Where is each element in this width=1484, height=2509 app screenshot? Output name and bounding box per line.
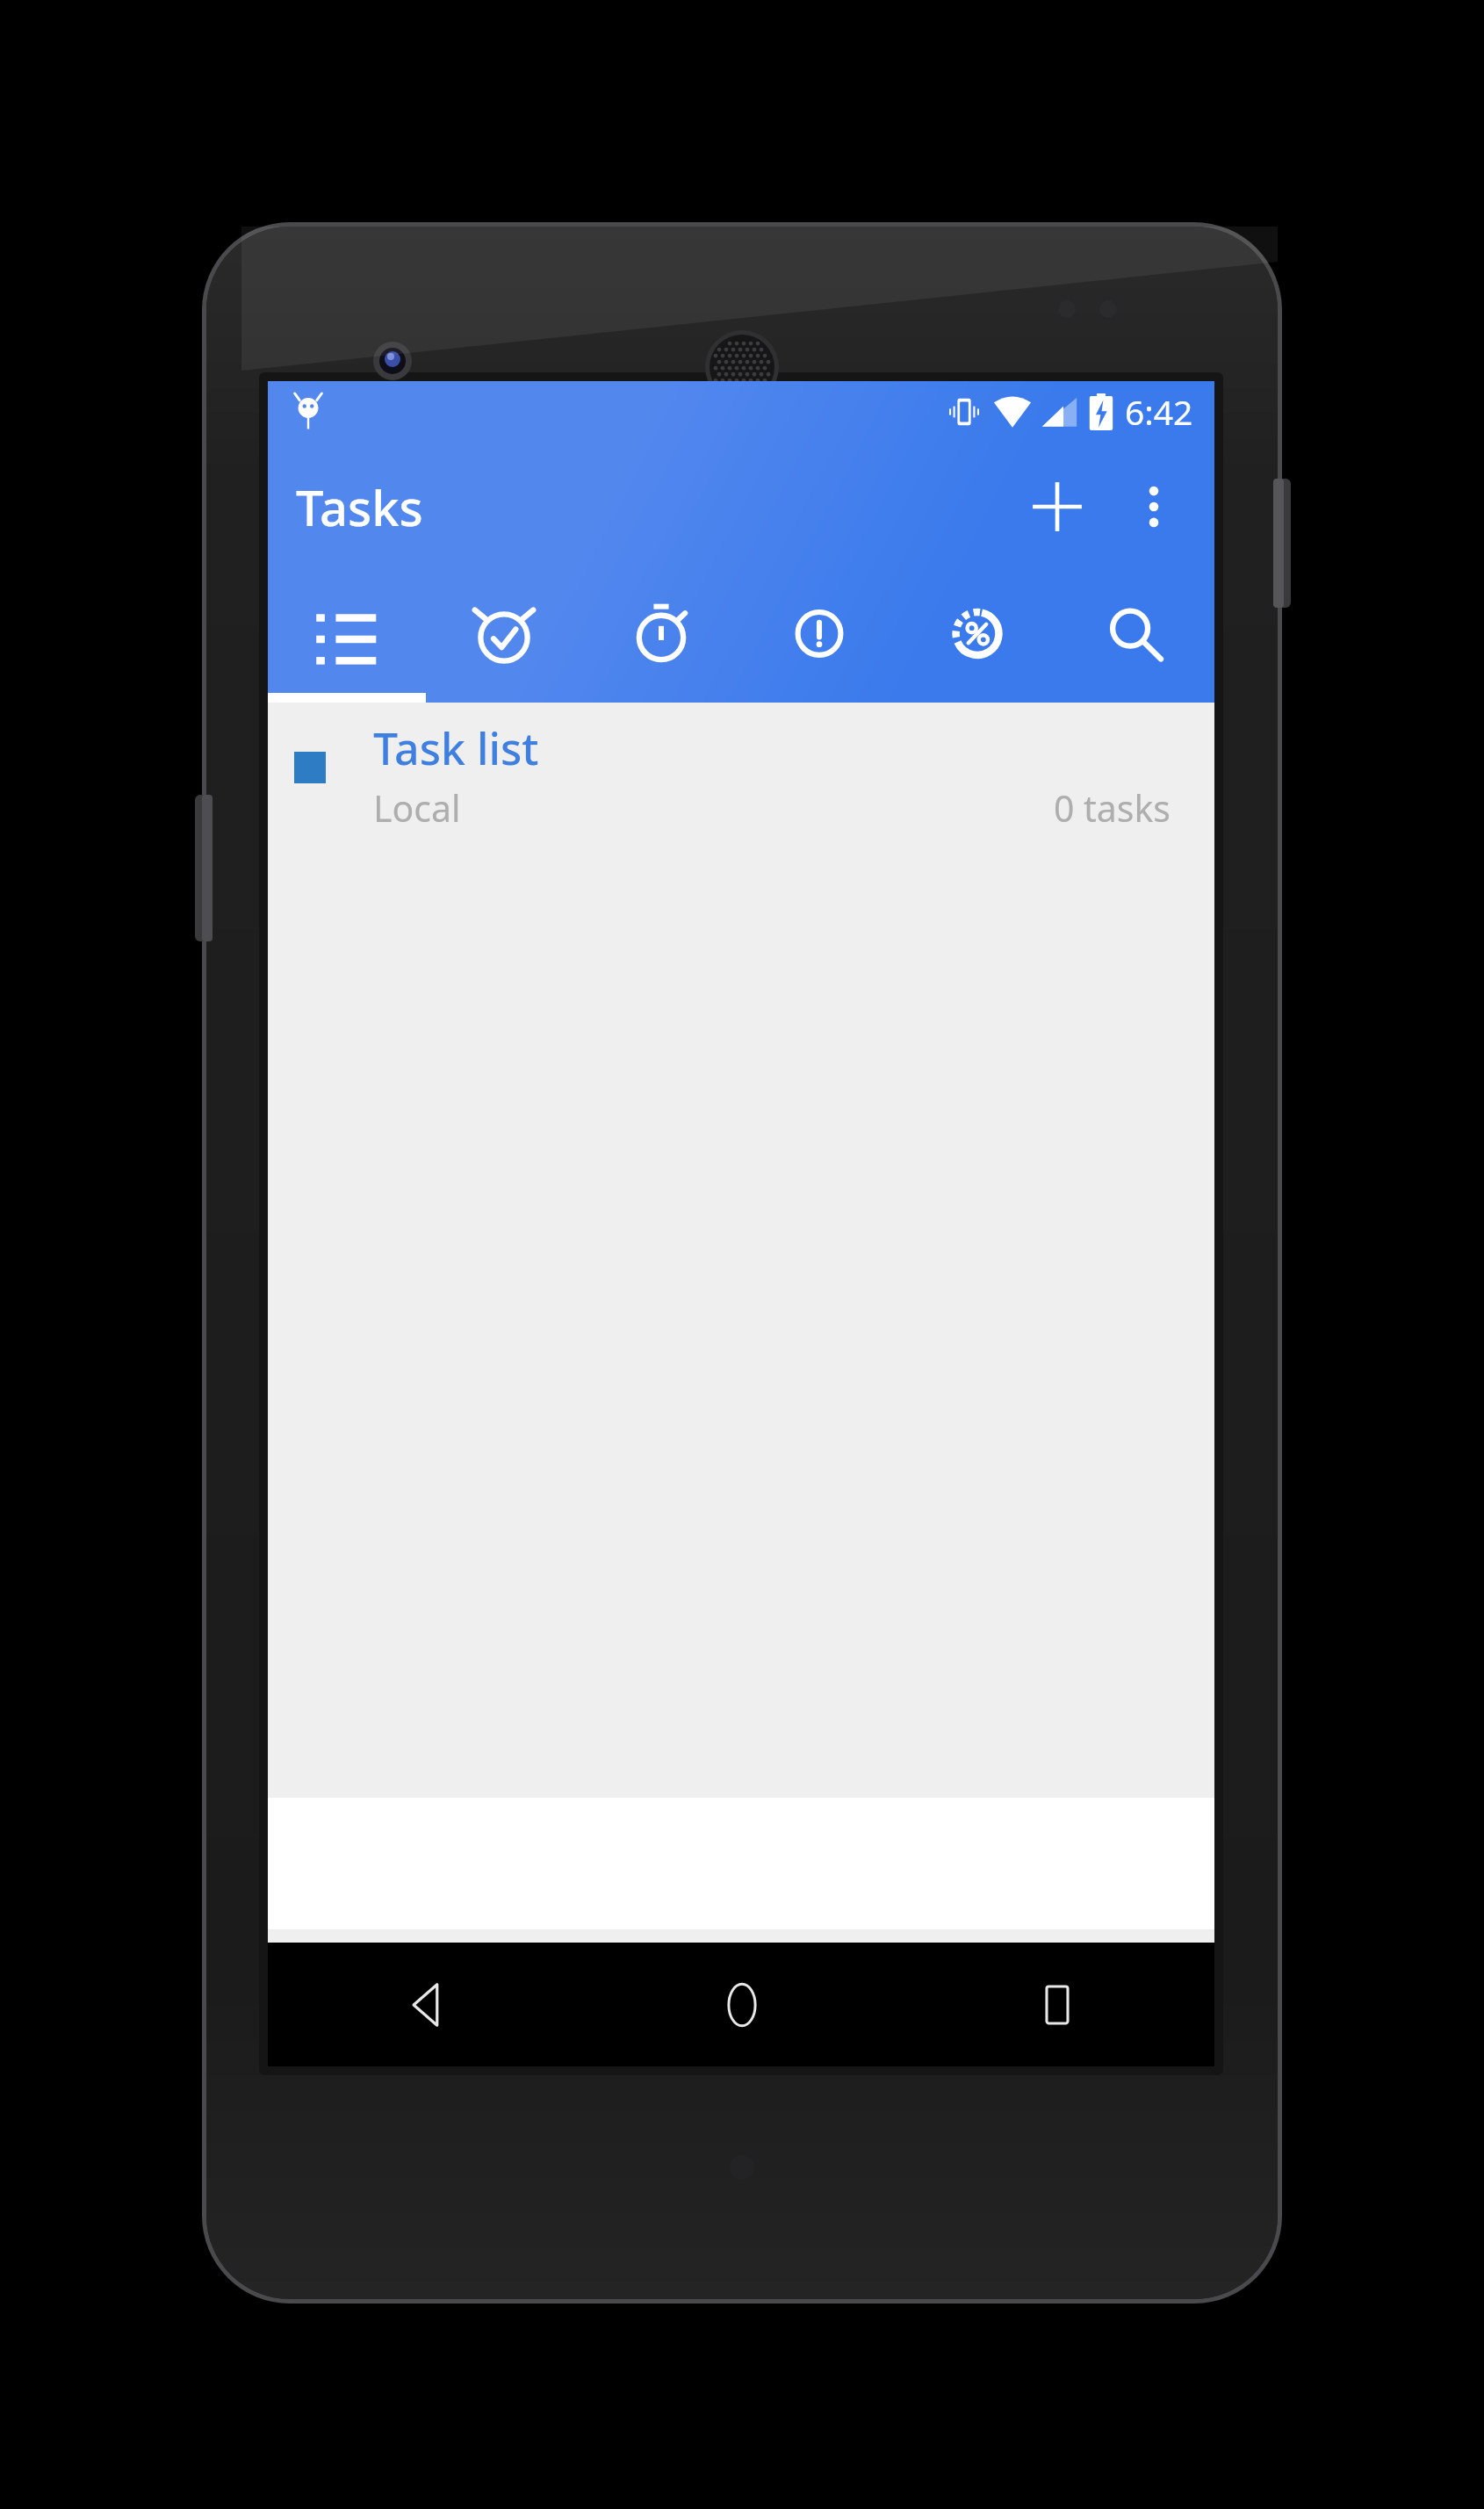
button[interactable]: Search [1056, 573, 1214, 703]
button[interactable]: Add task [1009, 458, 1106, 555]
staticText: Local [373, 783, 461, 833]
button[interactable]: Home [584, 1943, 899, 2066]
staticText: Tasks [296, 473, 423, 540]
button[interactable]: Timers [582, 573, 740, 703]
button[interactable]: Task list [268, 703, 1214, 834]
button[interactable]: Priority [740, 573, 898, 703]
staticText: 6:42 [1125, 388, 1193, 435]
button[interactable]: More options [1106, 458, 1202, 555]
button[interactable]: Progress [898, 573, 1056, 703]
button[interactable]: Back [268, 1943, 584, 2066]
staticText: 0 tasks [1053, 783, 1171, 833]
staticText: Task list [373, 718, 539, 778]
button[interactable]: Lists [268, 573, 425, 703]
button[interactable]: Recent apps [899, 1943, 1214, 2066]
button[interactable]: Reminders [425, 573, 582, 703]
